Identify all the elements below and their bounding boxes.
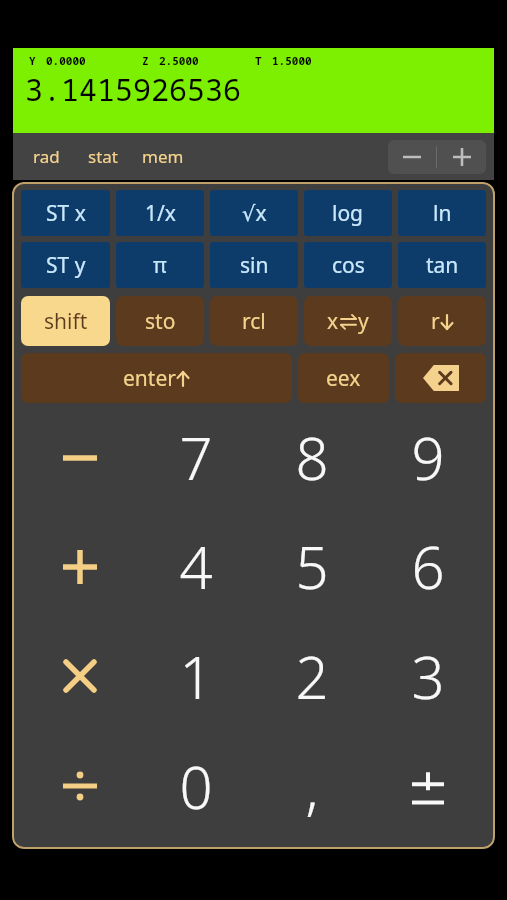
- button[interactable]: mem: [138, 141, 188, 172]
- staticText: tan: [426, 251, 459, 280]
- button[interactable]: shift: [21, 296, 110, 346]
- button[interactable]: [370, 731, 486, 841]
- staticText: rcl: [242, 307, 266, 336]
- button[interactable]: 7: [138, 403, 254, 512]
- staticText: π: [153, 251, 167, 280]
- staticText: 7: [179, 418, 213, 497]
- staticText: 8: [295, 418, 329, 497]
- button[interactable]: 8: [254, 403, 370, 512]
- button[interactable]: Backspace: [395, 353, 486, 403]
- staticText: ST x: [46, 199, 86, 228]
- staticText: mem: [142, 145, 184, 168]
- staticText: T: [255, 53, 262, 68]
- staticText: 5: [295, 527, 329, 606]
- staticText: Z: [142, 53, 149, 68]
- staticText: 1.5000: [272, 53, 312, 68]
- button[interactable]: 1: [138, 621, 254, 731]
- button[interactable]: cos: [304, 242, 392, 288]
- button[interactable]: 5: [254, 512, 370, 621]
- button[interactable]: 2: [254, 621, 370, 731]
- button[interactable]: minus: [21, 403, 138, 512]
- button[interactable]: x: [304, 296, 392, 346]
- staticText: 2: [295, 637, 329, 716]
- staticText: 0: [179, 747, 213, 826]
- button[interactable]: enter: [21, 353, 292, 403]
- staticText: enter: [123, 364, 176, 393]
- button[interactable]: π: [116, 242, 204, 288]
- staticText: √x: [242, 199, 267, 228]
- staticText: 9: [411, 418, 445, 497]
- staticText: 4: [179, 527, 213, 606]
- button[interactable]: r: [398, 296, 486, 346]
- staticText: stat: [88, 145, 118, 168]
- staticText: shift: [44, 307, 88, 336]
- button[interactable]: tan: [398, 242, 486, 288]
- button[interactable]: Decrease: [388, 140, 436, 174]
- staticText: 1/x: [145, 199, 176, 228]
- staticText: 0.0000: [46, 53, 86, 68]
- staticText: 3: [411, 637, 445, 716]
- button[interactable]: 0: [138, 731, 254, 841]
- staticText: r: [431, 307, 440, 336]
- staticText: eex: [326, 364, 361, 393]
- staticText: cos: [332, 251, 365, 280]
- button[interactable]: 4: [138, 512, 254, 621]
- button[interactable]: ST x: [21, 190, 110, 236]
- staticText: 1: [179, 637, 213, 716]
- button[interactable]: 1/x: [116, 190, 204, 236]
- button[interactable]: stat: [84, 141, 122, 172]
- button[interactable]: ln: [398, 190, 486, 236]
- button[interactable]: Increase: [437, 140, 486, 174]
- staticText: 3.1415926536: [25, 69, 241, 110]
- staticText: rad: [33, 145, 60, 168]
- button[interactable]: ,: [254, 731, 370, 841]
- button[interactable]: rcl: [210, 296, 298, 346]
- button[interactable]: log: [304, 190, 392, 236]
- button[interactable]: div: [21, 731, 138, 841]
- staticText: sto: [145, 307, 176, 336]
- staticText: sin: [240, 251, 269, 280]
- staticText: 2.5000: [159, 53, 199, 68]
- button[interactable]: 9: [370, 403, 486, 512]
- staticText: x: [327, 307, 339, 336]
- button[interactable]: rad: [29, 141, 64, 172]
- button[interactable]: plus: [21, 512, 138, 621]
- staticText: ST y: [46, 251, 86, 280]
- button[interactable]: 6: [370, 512, 486, 621]
- staticText: ln: [433, 199, 452, 228]
- staticText: y: [358, 307, 369, 336]
- button[interactable]: times: [21, 621, 138, 731]
- button[interactable]: eex: [298, 353, 389, 403]
- staticText: log: [332, 199, 364, 228]
- button[interactable]: 3: [370, 621, 486, 731]
- staticText: 6: [411, 527, 445, 606]
- staticText: ,: [305, 747, 319, 826]
- button[interactable]: √x: [210, 190, 298, 236]
- button[interactable]: sin: [210, 242, 298, 288]
- button[interactable]: sto: [116, 296, 204, 346]
- button[interactable]: ST y: [21, 242, 110, 288]
- button[interactable]: Y: [13, 48, 494, 133]
- staticText: Y: [29, 53, 36, 68]
